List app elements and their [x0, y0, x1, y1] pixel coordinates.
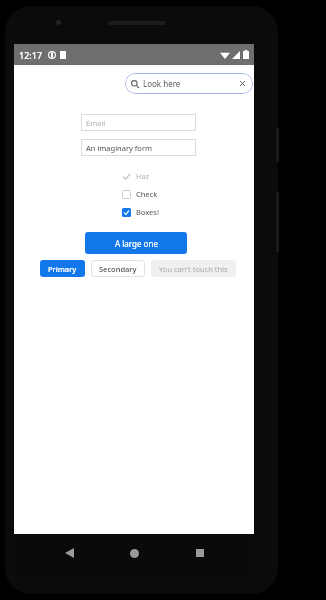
- staticText: An imaginary form: [86, 143, 153, 153]
- staticText: Boxes!: [136, 207, 159, 217]
- button[interactable]: A large one: [85, 232, 187, 254]
- staticText: A large one: [115, 238, 158, 249]
- button[interactable]: Email: [81, 114, 196, 131]
- button[interactable]: Clear search: [238, 79, 247, 88]
- staticText: Check: [136, 189, 158, 199]
- staticText: Secondary: [99, 264, 137, 274]
- staticText: Email: [86, 118, 106, 128]
- button[interactable]: Primary: [40, 260, 85, 277]
- staticText: Look here: [143, 78, 181, 89]
- button[interactable]: Boxes!: [122, 207, 159, 217]
- button[interactable]: Home: [123, 542, 145, 564]
- staticText: You can't touch this: [159, 264, 228, 274]
- button[interactable]: Look here: [125, 73, 253, 94]
- button[interactable]: Secondary: [91, 260, 145, 277]
- staticText: Primary: [48, 264, 77, 274]
- staticText: 12:17: [19, 49, 43, 61]
- staticText: Haz: [136, 171, 150, 181]
- button[interactable]: An imaginary form: [81, 139, 196, 156]
- button[interactable]: Haz: [122, 171, 150, 181]
- button[interactable]: Recent apps: [189, 542, 211, 564]
- button[interactable]: You can't touch this: [151, 260, 236, 277]
- button[interactable]: Back: [58, 542, 80, 564]
- button[interactable]: Check: [122, 189, 158, 199]
